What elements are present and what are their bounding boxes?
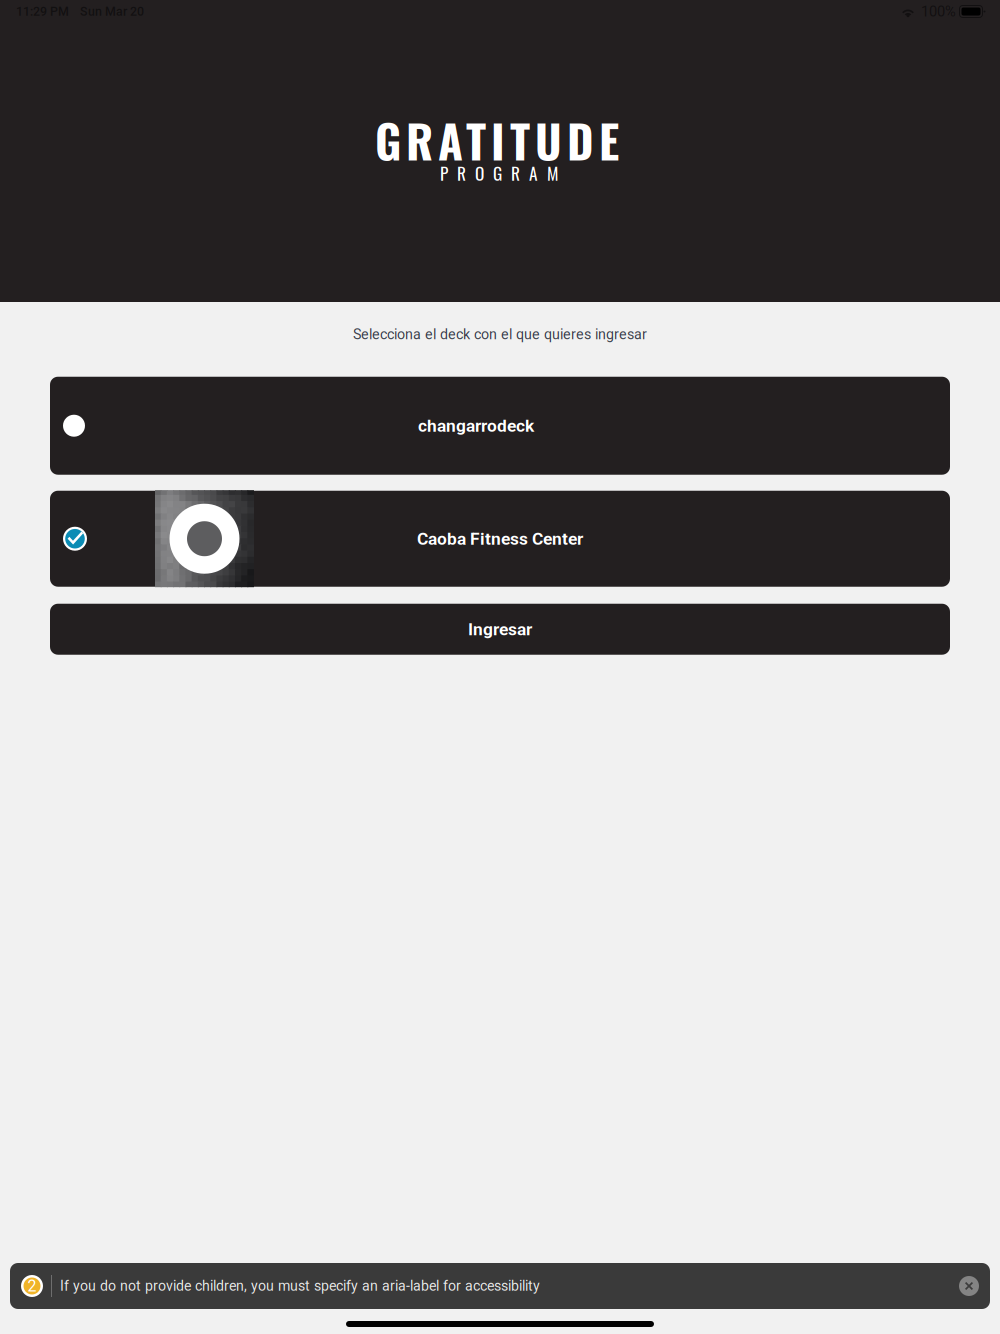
button[interactable]: Ingresar: [50, 604, 950, 655]
button[interactable]: Dismiss warning: [948, 1263, 990, 1309]
staticText: 100%: [921, 3, 956, 20]
staticText: If you do not provide children, you must…: [60, 1278, 540, 1294]
staticText: GRATITUDE: [375, 106, 619, 174]
button[interactable]: changarrodeck: [50, 377, 950, 475]
staticText: 2: [27, 1277, 36, 1295]
staticText: Sun Mar 20: [80, 4, 144, 19]
staticText: Selecciona el deck con el que quieres in…: [353, 326, 647, 343]
staticText: Ingresar: [468, 619, 532, 639]
staticText: changarrodeck: [418, 416, 534, 436]
staticText: 11:29 PM: [16, 4, 69, 19]
staticText: PROGRAM: [440, 160, 558, 186]
staticText: Caoba Fitness Center: [417, 529, 583, 549]
button[interactable]: Caoba Fitness Center: [50, 491, 950, 587]
